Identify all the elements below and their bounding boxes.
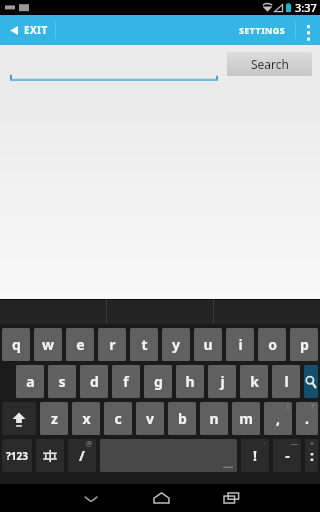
staticText: w (42, 335, 54, 354)
button[interactable]: / (68, 439, 96, 472)
staticText: c (114, 409, 122, 428)
button[interactable]: h (176, 365, 204, 398)
button[interactable]: c (104, 402, 132, 435)
button[interactable] (107, 299, 213, 324)
staticText: z (51, 409, 58, 428)
button[interactable]: g (144, 365, 172, 398)
staticText: b (178, 409, 187, 428)
button[interactable] (10, 61, 218, 81)
staticText: i (238, 335, 243, 354)
button[interactable]: x (72, 402, 100, 435)
button[interactable] (214, 299, 320, 324)
staticText: d (90, 372, 99, 391)
button[interactable]: v (136, 402, 164, 435)
button[interactable]: . (296, 402, 318, 435)
button[interactable]: Hide keyboard (66, 484, 115, 512)
button[interactable]: l (272, 365, 300, 398)
staticText: ?123 (6, 449, 28, 463)
button[interactable]: n (200, 402, 228, 435)
button[interactable]: Shift (2, 402, 36, 435)
button[interactable]: y (162, 328, 190, 361)
staticText: h (185, 372, 195, 391)
button[interactable]: Search (227, 52, 312, 76)
button[interactable]: ?123 (2, 439, 32, 472)
staticText: q (12, 335, 21, 354)
button[interactable]: SETTINGS (230, 15, 295, 45)
button[interactable]: k (240, 365, 268, 398)
staticText: y (172, 335, 180, 354)
staticText: u (203, 335, 213, 354)
button[interactable]: w (34, 328, 62, 361)
button[interactable]: t (130, 328, 158, 361)
button[interactable]: r (98, 328, 126, 361)
staticText: s (58, 372, 66, 391)
staticText: m (239, 409, 253, 428)
staticText: SETTINGS (239, 24, 286, 36)
staticText: a (26, 372, 35, 391)
button[interactable] (0, 299, 106, 324)
button[interactable]: p (290, 328, 318, 361)
button[interactable]: , (264, 402, 292, 435)
button[interactable]: a (16, 365, 44, 398)
button[interactable]: z (40, 402, 68, 435)
staticText: ! (253, 446, 257, 465)
button[interactable]: q (2, 328, 30, 361)
staticText: @ (86, 439, 93, 449)
button[interactable]: Recent apps (207, 484, 255, 512)
button[interactable]: j (208, 365, 236, 398)
button[interactable]: EXIT (0, 15, 58, 45)
staticText: : (310, 446, 314, 465)
button[interactable]: o (258, 328, 286, 361)
staticText: e (76, 335, 85, 354)
staticText: k (250, 372, 259, 391)
staticText: x (82, 409, 91, 428)
button[interactable]: d (80, 365, 108, 398)
button[interactable]: b (168, 402, 196, 435)
staticText: o (268, 335, 277, 354)
staticText: j (220, 372, 225, 391)
button[interactable]: f (112, 365, 140, 398)
staticText: l (284, 372, 289, 391)
staticText: - (285, 446, 290, 465)
button[interactable]: Home (137, 484, 185, 512)
button[interactable]: : (305, 439, 318, 472)
staticText: EXIT (24, 23, 48, 37)
staticText: , (276, 409, 280, 428)
staticText: Search (251, 56, 289, 72)
button[interactable]: e (66, 328, 94, 361)
staticText: 3:37 (295, 0, 317, 15)
staticText: g (154, 372, 163, 391)
button[interactable]: Search (304, 365, 318, 398)
button[interactable]: Change language (36, 439, 64, 472)
button[interactable]: More options (296, 15, 320, 45)
staticText: r (109, 335, 116, 354)
button[interactable]: m (232, 402, 260, 435)
button[interactable]: s (48, 365, 76, 398)
button[interactable]: ! (241, 439, 269, 472)
button[interactable]: - (273, 439, 301, 472)
staticText: n (209, 409, 219, 428)
staticText: · (264, 439, 266, 449)
staticText: . (305, 409, 309, 428)
staticText: / (79, 446, 85, 465)
staticText: + (310, 439, 315, 449)
button[interactable]: u (194, 328, 222, 361)
staticText: ! (287, 402, 289, 412)
staticText: — (291, 439, 298, 449)
staticText: p (300, 335, 309, 354)
button[interactable]: i (226, 328, 254, 361)
staticText: t (141, 335, 148, 354)
staticText: v (146, 409, 154, 428)
staticText: ? (311, 402, 315, 412)
staticText: f (123, 372, 129, 391)
